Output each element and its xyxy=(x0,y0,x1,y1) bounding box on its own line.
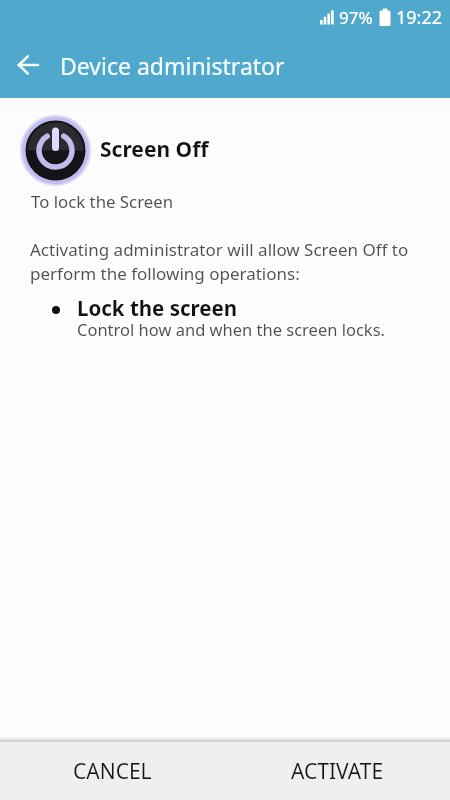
staticText: Lock the screen xyxy=(77,294,238,322)
button[interactable]: CANCEL xyxy=(0,742,225,800)
staticText: Device administrator xyxy=(60,50,285,81)
button[interactable]: ACTIVATE xyxy=(225,742,450,800)
staticText: To lock the Screen xyxy=(31,190,174,213)
staticText: 97% xyxy=(339,6,373,29)
staticText: ACTIVATE xyxy=(291,757,384,786)
staticText: Control how and when the screen locks. xyxy=(77,318,385,340)
staticText: Activating administrator will allow Scre… xyxy=(30,238,409,285)
staticText: 19:22 xyxy=(396,5,443,30)
staticText: Screen Off xyxy=(100,135,209,164)
button[interactable] xyxy=(0,32,56,98)
staticText: CANCEL xyxy=(73,757,152,786)
